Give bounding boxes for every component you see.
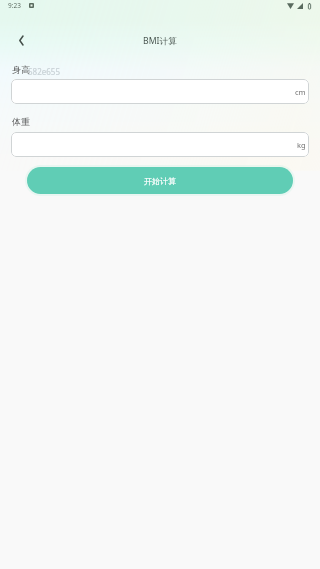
staticText: BMI计算 <box>143 35 177 47</box>
button[interactable]: 开始计算 <box>27 167 293 194</box>
staticText: 9:23 <box>8 1 21 10</box>
button[interactable]: cm <box>11 79 309 104</box>
staticText: 身高 <box>12 64 30 75</box>
button[interactable]: kg <box>11 132 309 157</box>
staticText: 体重 <box>12 116 30 127</box>
staticText: 582e655 <box>28 66 60 77</box>
staticText: 开始计算 <box>144 176 176 186</box>
staticText: kg <box>297 140 306 150</box>
staticText: cm <box>295 87 306 97</box>
button[interactable]: Back <box>9 28 33 52</box>
